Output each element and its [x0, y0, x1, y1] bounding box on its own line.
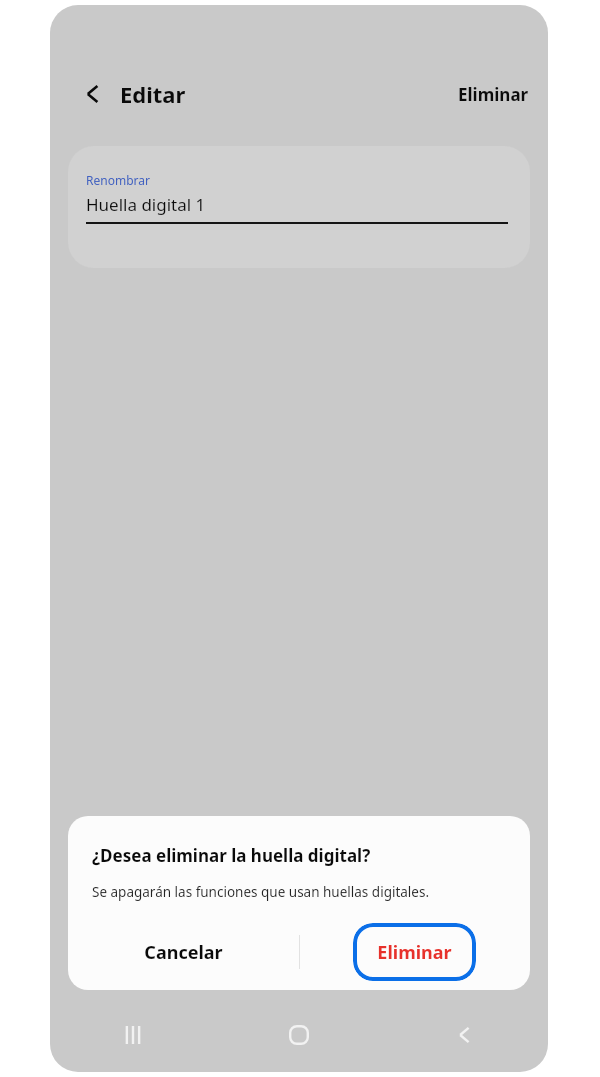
button[interactable]: Editar: [120, 79, 186, 109]
staticText: Cancelar: [144, 940, 223, 965]
staticText: Renombrar: [86, 172, 150, 188]
button[interactable]: Inicio: [216, 1004, 382, 1066]
staticText: Eliminar: [458, 83, 529, 106]
button[interactable]: Eliminar: [456, 77, 531, 112]
button[interactable]: Atrás: [382, 1004, 548, 1066]
staticText: Editar: [120, 79, 186, 109]
button[interactable]: Eliminar: [353, 923, 476, 981]
button[interactable]: Renombrar: [68, 146, 530, 268]
button[interactable]: Cancelar: [68, 914, 299, 990]
staticText: ¿Desea eliminar la huella digital?: [92, 844, 371, 867]
button[interactable]: Recientes: [50, 1004, 216, 1066]
staticText: Eliminar: [377, 940, 452, 965]
button[interactable]: Atrás: [76, 77, 110, 111]
staticText: Se apagarán las funciones que usan huell…: [92, 883, 430, 901]
staticText: Huella digital 1: [86, 193, 206, 216]
